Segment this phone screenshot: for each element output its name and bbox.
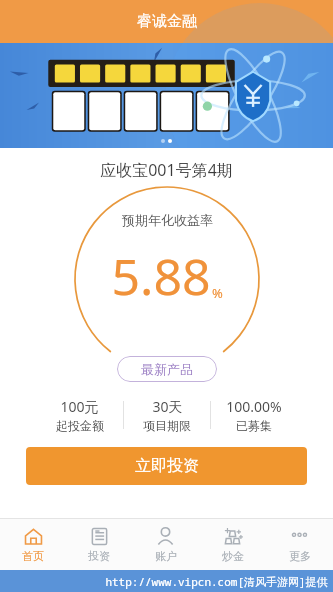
staticText: 100元 [60,397,99,416]
staticText: 立即投资 [135,456,199,476]
staticText: 5.88 [111,242,211,310]
staticText: 已募集 [236,418,272,433]
staticText: 投资 [88,549,110,563]
staticText: 预期年化收益率 [122,212,213,228]
staticText: http://www.vipcn.com[清风手游网]提供 [105,574,328,589]
button[interactable]: 立即投资 [26,447,307,485]
staticText: 更多 [289,549,311,563]
button[interactable]: 最新产品 [117,356,217,382]
staticText: 100.00% [226,397,282,416]
button[interactable]: 炒金 [199,519,266,570]
staticText: % [212,284,223,302]
button[interactable]: 100.00% [211,397,297,433]
staticText: 起投金额 [56,418,104,433]
staticText: 30天 [152,397,183,416]
staticText: 炒金 [222,549,244,563]
staticText: 睿诚金融 [137,12,197,31]
button[interactable]: 30天 [124,397,210,433]
button[interactable]: 100元 [36,397,123,433]
button[interactable]: 首页 [0,519,66,570]
button[interactable]: 投资 [66,519,132,570]
staticText: 应收宝001号第4期 [100,159,233,181]
staticText: 项目期限 [143,418,191,433]
button[interactable]: 更多 [266,519,333,570]
staticText: 首页 [22,549,44,563]
staticText: 最新产品 [141,361,193,377]
button[interactable]: 账户 [132,519,199,570]
staticText: 账户 [155,549,177,563]
